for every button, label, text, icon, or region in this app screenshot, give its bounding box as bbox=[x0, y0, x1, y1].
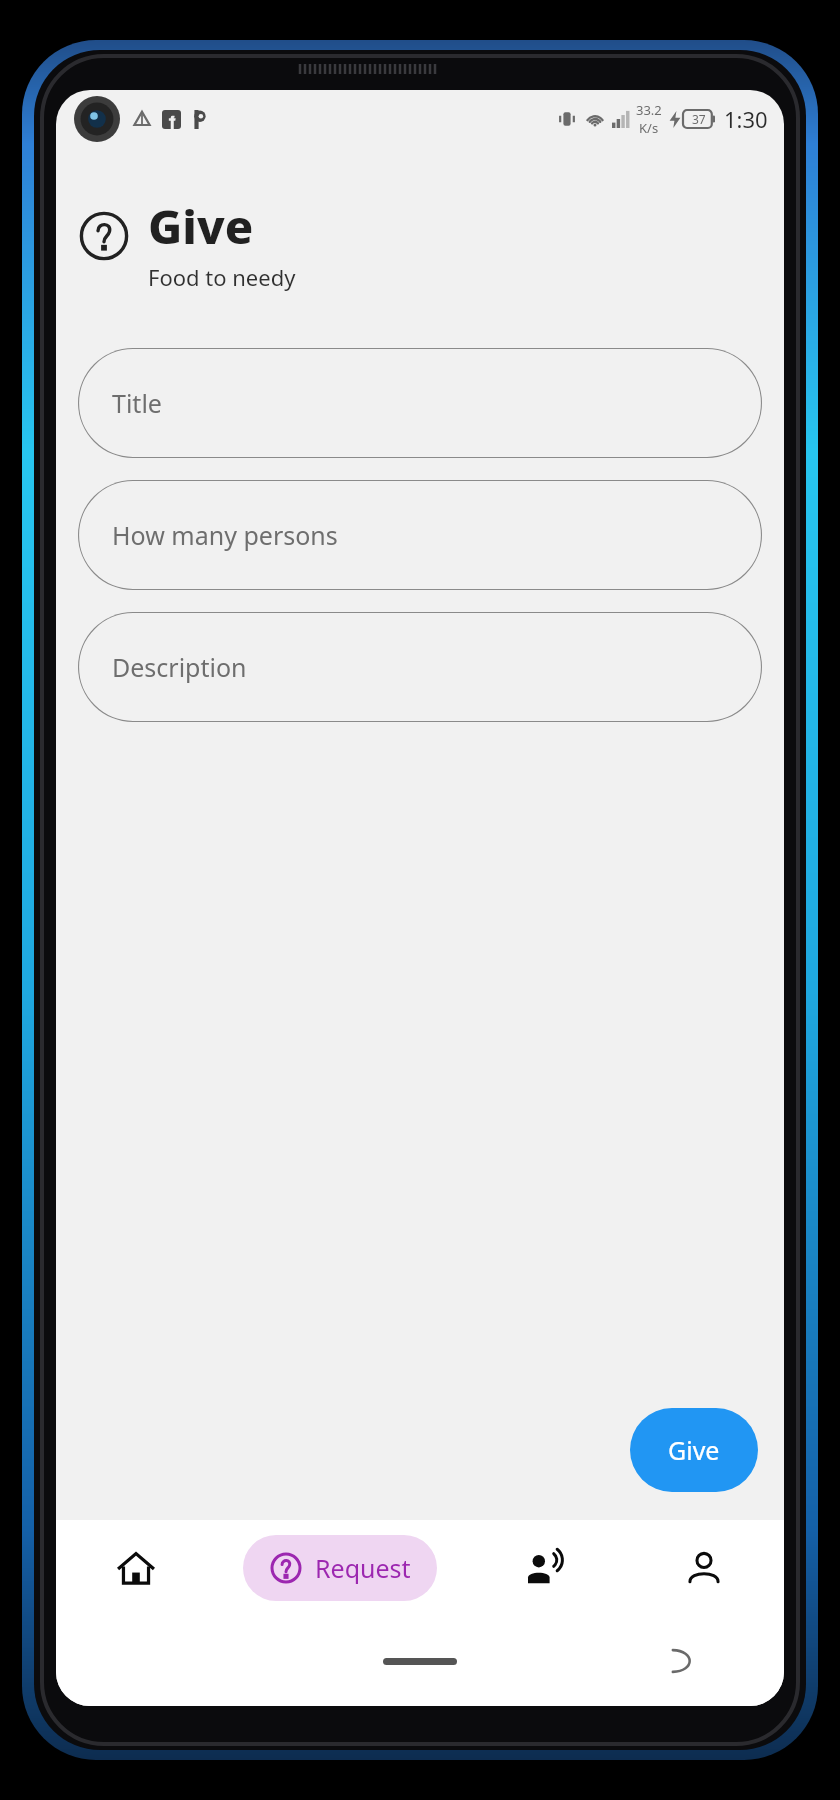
button[interactable]: Title bbox=[78, 348, 762, 458]
button[interactable]: Description bbox=[78, 612, 762, 722]
button[interactable]: How many persons bbox=[78, 480, 762, 590]
staticText: 1:30 bbox=[724, 104, 768, 134]
staticText: 37 bbox=[692, 111, 706, 127]
staticText: Description bbox=[112, 650, 247, 684]
staticText: Food to needy bbox=[148, 262, 296, 292]
staticText: Give bbox=[148, 194, 254, 258]
staticText: K/s bbox=[639, 119, 659, 137]
staticText: Give bbox=[668, 1433, 720, 1467]
staticText: How many persons bbox=[112, 518, 338, 552]
button[interactable]: Help bbox=[78, 210, 130, 262]
button[interactable]: Profile bbox=[624, 1520, 784, 1616]
staticText: Title bbox=[112, 386, 162, 420]
button[interactable]: Request bbox=[243, 1535, 437, 1601]
button[interactable]: Announcements bbox=[464, 1520, 624, 1616]
button[interactable]: Give bbox=[630, 1408, 758, 1492]
staticText: 33.2 bbox=[636, 101, 662, 119]
staticText: Request bbox=[315, 1551, 411, 1585]
button[interactable]: Home bbox=[56, 1520, 216, 1616]
